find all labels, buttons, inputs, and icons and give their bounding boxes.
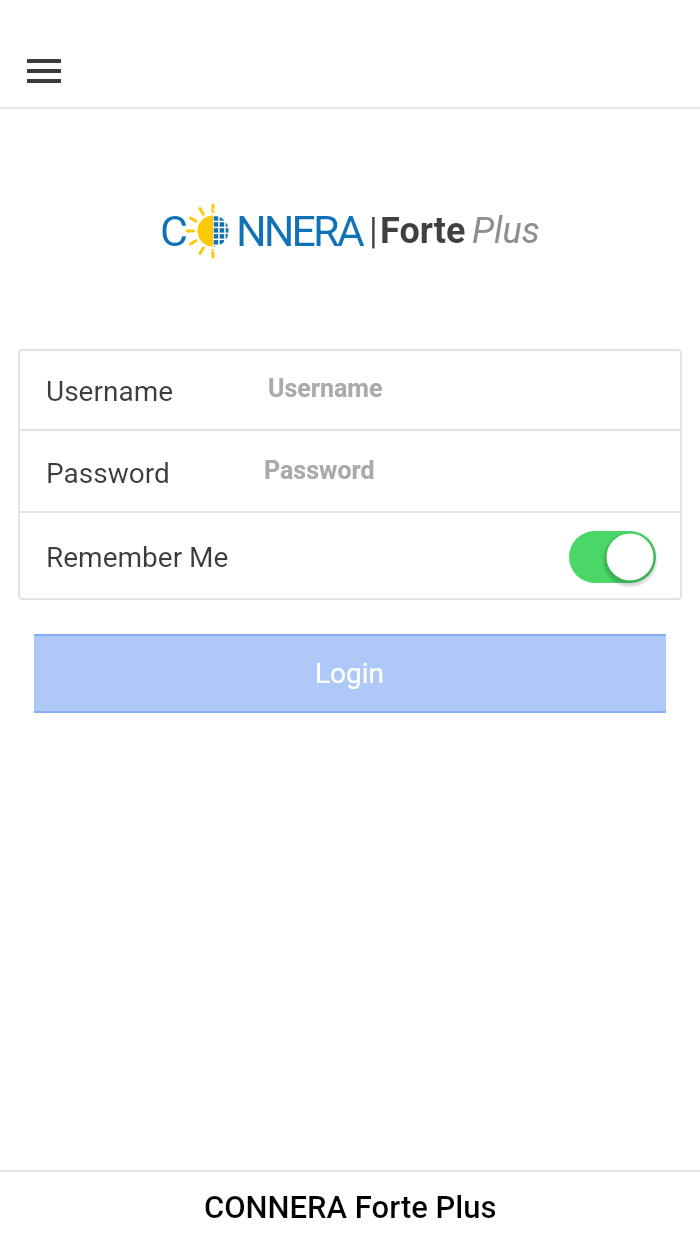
button[interactable]: Username — [18, 349, 682, 429]
button[interactable]: Menu — [9, 41, 79, 101]
staticText: Remember Me — [46, 541, 229, 574]
staticText: Password — [264, 456, 375, 485]
staticText: Username — [268, 374, 383, 403]
button[interactable]: Password — [18, 431, 682, 511]
button[interactable]: Login — [34, 634, 666, 713]
staticText: NNERA — [236, 206, 362, 256]
staticText: Username — [46, 375, 174, 408]
button[interactable]: Remember Me — [18, 513, 682, 600]
staticText: Password — [46, 457, 170, 490]
staticText: CONNERA Forte Plus — [204, 1189, 497, 1225]
staticText: C — [160, 206, 188, 256]
staticText: Login — [315, 657, 385, 690]
staticText: Plus — [472, 210, 540, 252]
staticText: | — [369, 210, 378, 252]
staticText: Forte — [380, 210, 466, 252]
button[interactable]: Remember Me toggle — [569, 531, 656, 583]
